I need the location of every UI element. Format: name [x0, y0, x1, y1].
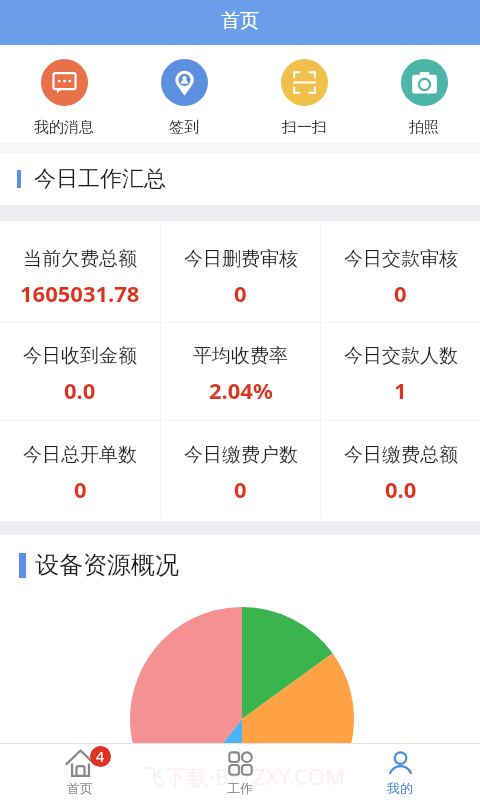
staticText: 签到 — [169, 118, 199, 137]
staticText: 当前欠费总额 — [23, 247, 137, 271]
button[interactable]: 当前欠费总额 — [0, 221, 160, 322]
button[interactable]: 平均收费率 — [161, 323, 320, 420]
staticText: 首页 — [67, 780, 93, 796]
staticText: 2.04% — [209, 375, 273, 405]
staticText: 0.0 — [64, 375, 96, 405]
staticText: 今日缴费总额 — [344, 443, 458, 467]
staticText: 0 — [394, 278, 407, 308]
staticText: 今日缴费户数 — [184, 443, 298, 467]
button[interactable]: 今日总开单数 — [0, 421, 160, 517]
staticText: 今日交款审核 — [344, 247, 458, 271]
button[interactable]: 工作 — [160, 743, 320, 800]
staticText: 1605031.78 — [20, 278, 140, 308]
staticText: 1 — [394, 375, 407, 405]
staticText: 4 — [96, 747, 105, 766]
staticText: 今日总开单数 — [23, 443, 137, 467]
button[interactable]: 今日交款审核 — [321, 221, 480, 322]
staticText: 拍照 — [409, 118, 439, 137]
staticText: 今日收到金额 — [23, 344, 137, 368]
staticText: 飞下载·BFTZXY.COM — [143, 761, 345, 791]
button[interactable]: 今日缴费户数 — [161, 421, 320, 517]
staticText: 今日交款人数 — [344, 344, 458, 368]
button[interactable]: 我的 — [320, 743, 480, 800]
button[interactable]: 今日收到金额 — [0, 323, 160, 420]
button[interactable]: 今日交款人数 — [321, 323, 480, 420]
button[interactable]: 我的消息 — [4, 45, 124, 143]
staticText: 平均收费率 — [193, 344, 288, 368]
button[interactable]: 签到 — [124, 45, 244, 143]
staticText: 设备资源概况 — [35, 550, 179, 580]
staticText: 工作 — [227, 780, 253, 796]
staticText: 今日删费审核 — [184, 247, 298, 271]
button[interactable]: 今日删费审核 — [161, 221, 320, 322]
button[interactable]: 扫一扫 — [244, 45, 364, 143]
button[interactable]: 4 — [0, 743, 160, 800]
staticText: 0.0 — [385, 474, 417, 504]
staticText: 我的 — [387, 780, 413, 796]
staticText: 扫一扫 — [282, 118, 327, 137]
staticText: 0 — [234, 474, 247, 504]
staticText: 今日工作汇总 — [34, 165, 166, 193]
staticText: 首页 — [221, 9, 259, 33]
staticText: 0 — [74, 474, 87, 504]
button[interactable]: 拍照 — [364, 45, 480, 143]
button[interactable]: 今日缴费总额 — [321, 421, 480, 517]
staticText: 我的消息 — [34, 118, 94, 137]
staticText: 0 — [234, 278, 247, 308]
